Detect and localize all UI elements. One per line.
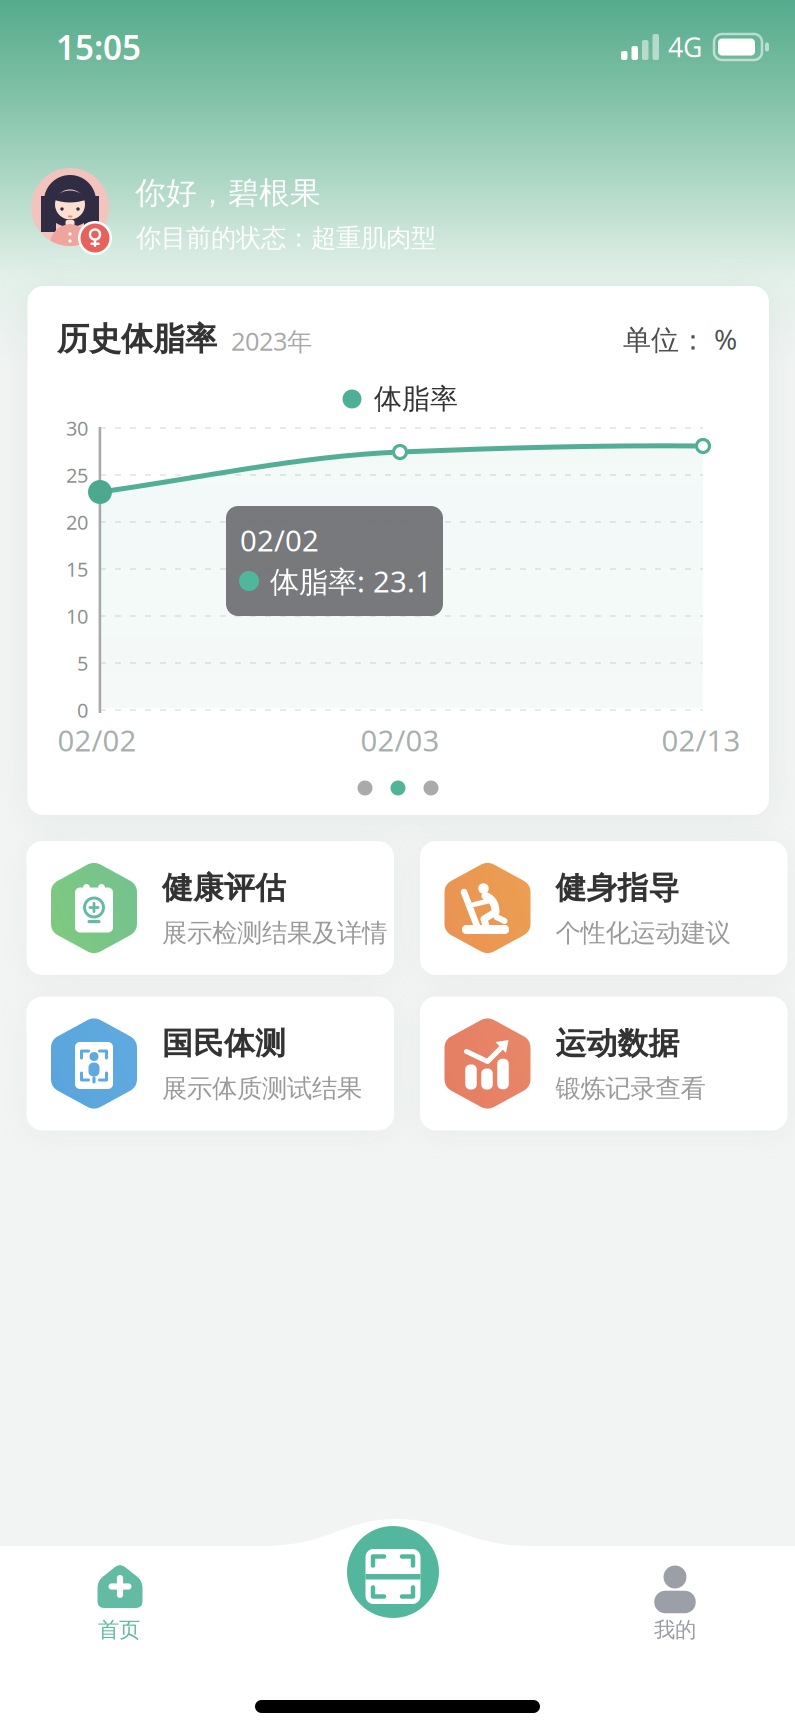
staticText: 15:05 [56, 25, 141, 69]
staticText: 25 [66, 462, 88, 488]
staticText: 20 [66, 509, 88, 535]
staticText: 首页 [98, 1617, 140, 1643]
staticText: 个性化运动建议 [555, 917, 730, 948]
staticText: 5 [77, 650, 88, 676]
staticText: 你好，碧根果 [135, 174, 321, 212]
staticText: 2023年 [231, 324, 312, 358]
staticText: 展示体质测试结果 [162, 1073, 362, 1104]
button[interactable]: 我的 [630, 1560, 720, 1644]
staticText: 历史体脂率 [57, 319, 217, 359]
staticText: 运动数据 [555, 1025, 679, 1062]
staticText: 单位： % [623, 320, 737, 358]
staticText: 10 [66, 603, 88, 629]
staticText: 15 [66, 556, 88, 582]
staticText: 我的 [654, 1617, 696, 1643]
staticText: 30 [66, 415, 88, 441]
button[interactable]: 运动数据 [420, 996, 787, 1130]
staticText: 02/02 [240, 520, 319, 559]
staticText: 0 [77, 697, 88, 723]
staticText: 国民体测 [162, 1025, 286, 1062]
staticText: 锻炼记录查看 [555, 1073, 705, 1104]
staticText: 4G [668, 29, 702, 65]
staticText: 02/13 [661, 720, 740, 759]
staticText: 02/02 [57, 720, 136, 759]
staticText: 健康评估 [162, 869, 286, 907]
staticText: 体脂率: 23.1 [270, 561, 432, 600]
staticText: 展示检测结果及详情 [162, 917, 387, 948]
button[interactable]: 国民体测 [26, 996, 394, 1130]
button[interactable]: 健身指导 [420, 841, 787, 975]
staticText: 体脂率 [374, 382, 458, 416]
button[interactable]: 扫描 [347, 1526, 439, 1618]
button[interactable]: 首页 [74, 1560, 164, 1644]
staticText: 健身指导 [555, 869, 679, 907]
staticText: 你目前的状态：超重肌肉型 [136, 222, 436, 253]
staticText: 02/03 [360, 720, 439, 759]
button[interactable]: 健康评估 [26, 841, 394, 975]
